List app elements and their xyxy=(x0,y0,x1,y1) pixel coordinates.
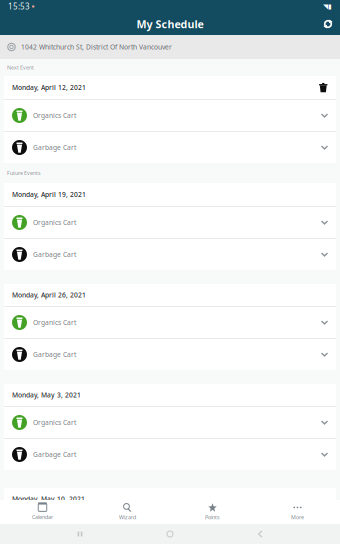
staticText: ◥▮ xyxy=(323,3,332,10)
staticText: Next Event xyxy=(7,64,34,71)
button[interactable]: Refresh xyxy=(323,19,340,29)
staticText: My Schedule xyxy=(136,17,203,31)
staticText: Monday, May 10, 2021 xyxy=(12,495,85,503)
button[interactable]: Recents xyxy=(70,524,90,544)
staticText: Garbage Cart xyxy=(33,350,76,359)
button[interactable]: Garbage Cart xyxy=(4,239,336,270)
button[interactable]: Calendar xyxy=(0,500,85,524)
staticText: Calendar xyxy=(32,513,53,520)
staticText: Monday, April 19, 2021 xyxy=(12,190,86,199)
button[interactable]: Wizard xyxy=(85,500,170,524)
button[interactable]: More xyxy=(255,500,340,524)
button[interactable]: 1042 Whitchurch St, District Of North Va… xyxy=(0,35,340,59)
button[interactable]: Organics Cart xyxy=(4,100,336,131)
staticText: Organics Cart xyxy=(33,218,76,227)
staticText: Garbage Cart xyxy=(33,143,76,152)
staticText: Monday, April 12, 2021 xyxy=(12,83,86,92)
button[interactable]: Organics Cart xyxy=(4,407,336,438)
staticText: 1042 Whitchurch St, District Of North Va… xyxy=(21,43,172,51)
staticText: Monday, May 3, 2021 xyxy=(12,391,81,399)
staticText: Organics Cart xyxy=(33,418,76,427)
staticText: More xyxy=(291,514,304,521)
button[interactable]: Garbage Cart xyxy=(4,132,336,163)
staticText: Organics Cart xyxy=(33,111,76,120)
button[interactable]: Organics Cart xyxy=(4,307,336,338)
button[interactable]: Points xyxy=(170,500,255,524)
staticText: 15:53 xyxy=(8,1,30,12)
staticText: Points xyxy=(205,514,220,521)
staticText: Monday, April 26, 2021 xyxy=(12,291,86,299)
staticText: Garbage Cart xyxy=(33,450,76,459)
button[interactable]: Garbage Cart xyxy=(4,439,336,470)
button[interactable]: Back xyxy=(250,524,270,544)
staticText: Organics Cart xyxy=(33,318,76,327)
button[interactable]: Garbage Cart xyxy=(4,339,336,370)
staticText: Wizard xyxy=(119,514,136,521)
staticText: Garbage Cart xyxy=(33,250,76,259)
button[interactable]: Organics Cart xyxy=(4,207,336,238)
staticText: Future Events xyxy=(7,169,41,177)
button[interactable]: Home xyxy=(160,524,180,544)
